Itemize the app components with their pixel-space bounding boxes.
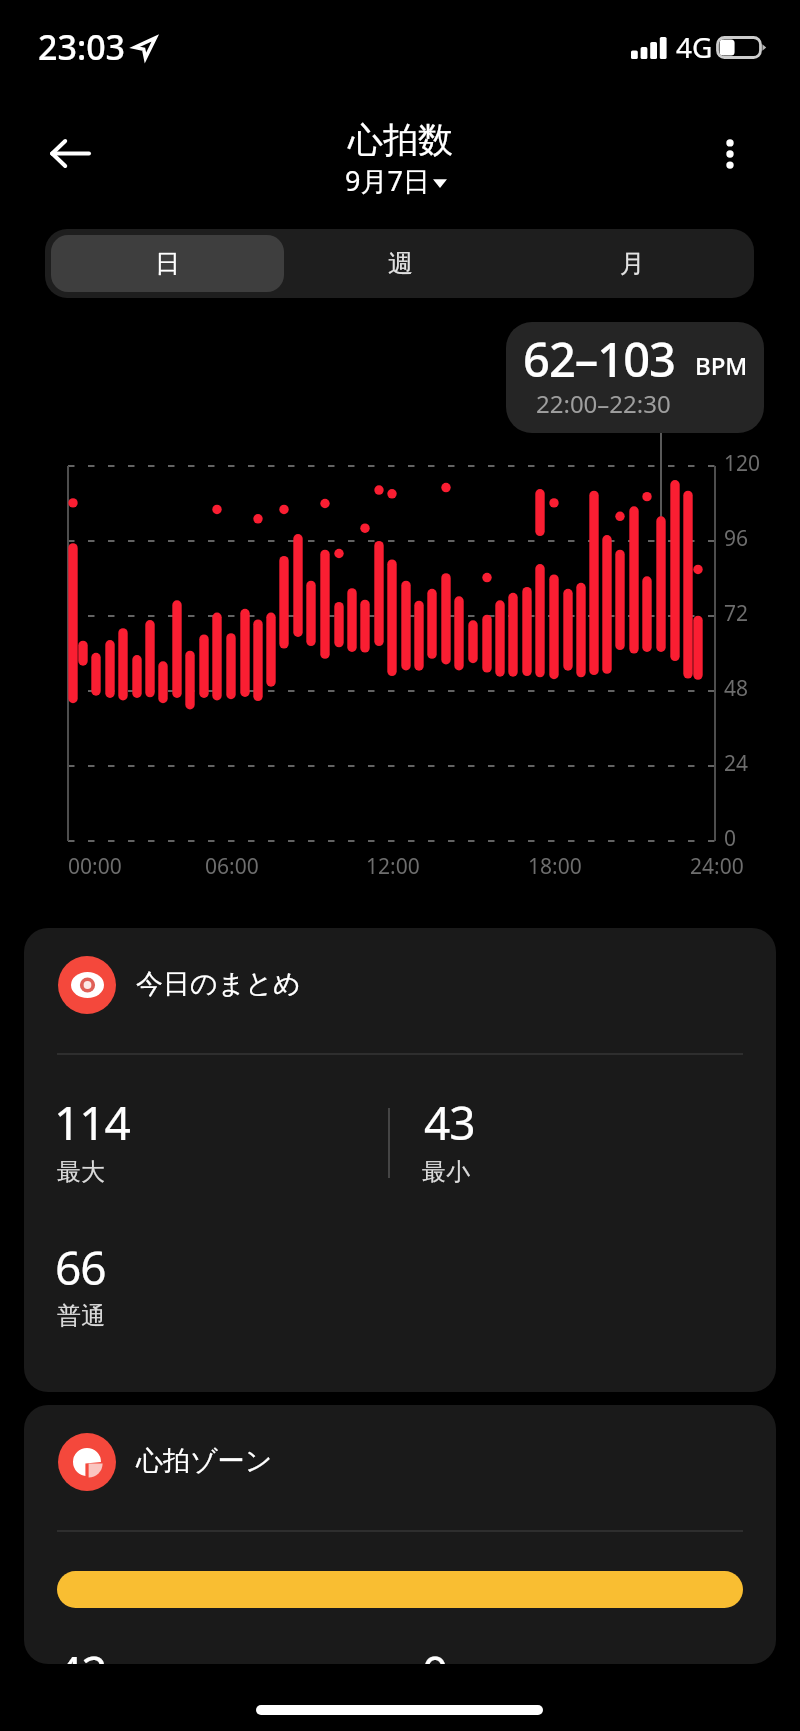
staticText: 62–103: [523, 327, 675, 391]
button[interactable]: 9月7日: [345, 162, 447, 199]
staticText: 0: [422, 1641, 448, 1664]
staticText: 18:00: [528, 852, 582, 881]
staticText: 24: [724, 749, 749, 778]
staticText: BPM: [695, 349, 748, 382]
staticText: 今日のまとめ: [136, 967, 301, 1001]
staticText: 48: [724, 674, 749, 703]
button[interactable]: 今日のまとめ: [24, 928, 776, 1392]
staticText: 43: [424, 1091, 475, 1154]
button[interactable]: 月: [516, 235, 748, 292]
staticText: 12:00: [366, 852, 420, 881]
staticText: 月: [620, 248, 645, 279]
button[interactable]: More options: [700, 124, 760, 184]
staticText: 9月7日: [345, 162, 430, 199]
staticText: 週: [388, 248, 413, 279]
staticText: 42: [56, 1641, 107, 1664]
staticText: 24:00: [690, 852, 744, 881]
button[interactable]: 週: [284, 235, 516, 292]
staticText: 0: [724, 824, 737, 853]
staticText: 日: [155, 248, 180, 279]
staticText: 心拍ゾーン: [136, 1444, 273, 1478]
staticText: 4G: [676, 28, 713, 66]
button[interactable]: 心拍ゾーン: [24, 1405, 776, 1664]
button[interactable]: 日: [51, 235, 284, 292]
staticText: 普通: [57, 1301, 105, 1331]
staticText: 00:00: [68, 852, 122, 881]
staticText: 06:00: [205, 852, 259, 881]
staticText: 96: [724, 524, 749, 553]
staticText: 最大: [57, 1157, 105, 1187]
staticText: 114: [54, 1091, 130, 1154]
button[interactable]: Back: [39, 122, 101, 184]
staticText: 72: [724, 599, 749, 628]
staticText: 22:00–22:30: [536, 387, 671, 420]
staticText: 23:03: [38, 24, 126, 70]
staticText: 心拍数: [348, 118, 453, 162]
staticText: 120: [724, 449, 761, 478]
staticText: 66: [55, 1236, 106, 1299]
staticText: 最小: [422, 1157, 470, 1187]
